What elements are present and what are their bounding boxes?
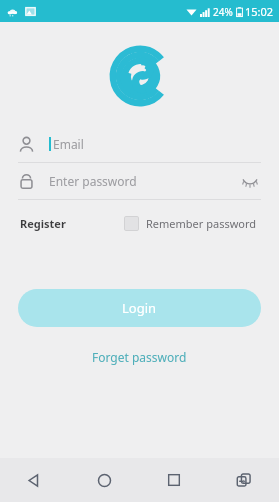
button[interactable]: Home: [69, 458, 139, 502]
button[interactable]: Enter password: [18, 163, 261, 200]
staticText: Register: [20, 216, 66, 231]
staticText: Login: [122, 299, 157, 317]
staticText: Enter password: [49, 173, 137, 189]
button[interactable]: Back: [0, 458, 69, 502]
button[interactable]: Remember password: [124, 210, 257, 237]
staticText: 15:02: [245, 4, 274, 19]
staticText: Forget password: [92, 349, 187, 365]
button[interactable]: Screenshot: [209, 458, 279, 502]
button[interactable]: Forget password: [86, 343, 193, 371]
button[interactable]: Recent apps: [139, 458, 209, 502]
button[interactable]: Show password: [239, 170, 261, 192]
button[interactable]: Login: [18, 289, 261, 327]
staticText: Email: [53, 136, 84, 152]
staticText: 24%: [213, 5, 233, 19]
staticText: Remember password: [146, 216, 257, 231]
button[interactable]: Register: [18, 210, 68, 237]
button[interactable]: Email: [18, 126, 261, 163]
